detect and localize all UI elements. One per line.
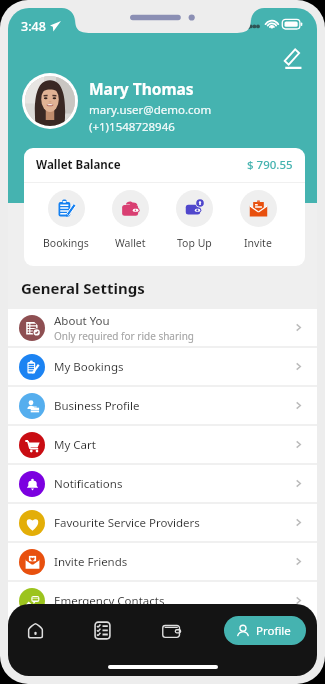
button[interactable]: Wallet bbox=[157, 616, 185, 644]
button[interactable]: Favourite Service Providers bbox=[8, 504, 317, 541]
staticText: Notifications bbox=[54, 476, 123, 492]
staticText: Favourite Service Providers bbox=[54, 515, 200, 531]
staticText: mary.user@demo.com bbox=[89, 102, 212, 118]
staticText: Invite Friends bbox=[54, 554, 128, 570]
button[interactable]: Home bbox=[21, 616, 49, 644]
staticText: Business Profile bbox=[54, 398, 140, 414]
staticText: My Cart bbox=[54, 437, 96, 453]
button[interactable]: Orders bbox=[88, 616, 116, 644]
staticText: Only required for ride sharing bbox=[54, 329, 195, 343]
staticText: 3:48 bbox=[21, 18, 46, 35]
staticText: Mary Thomas bbox=[89, 78, 194, 99]
button[interactable]: About You bbox=[8, 309, 317, 346]
button[interactable]: Edit profile bbox=[279, 43, 306, 70]
button[interactable]: My Bookings bbox=[8, 348, 317, 385]
staticText: About You bbox=[54, 313, 110, 329]
staticText: Emergency Contacts bbox=[54, 593, 165, 609]
button[interactable]: Notifications bbox=[8, 465, 317, 502]
staticText: (+1)1548728946 bbox=[89, 119, 175, 135]
staticText: Wallet Balance bbox=[36, 157, 121, 173]
button[interactable]: Bookings bbox=[34, 183, 98, 250]
button[interactable]: Profile bbox=[224, 616, 306, 645]
button[interactable]: Business Profile bbox=[8, 387, 317, 424]
staticText: $ 790.55 bbox=[247, 157, 293, 173]
button[interactable]: My Cart bbox=[8, 426, 317, 463]
staticText: Invite bbox=[244, 236, 272, 250]
button[interactable]: Emergency Contacts bbox=[8, 582, 317, 619]
staticText: Top Up bbox=[177, 236, 212, 250]
staticText: Bookings bbox=[43, 236, 89, 250]
button[interactable]: Invite Friends bbox=[8, 543, 317, 580]
button[interactable]: Wallet bbox=[98, 183, 162, 250]
staticText: My Bookings bbox=[54, 359, 124, 375]
staticText: Profile bbox=[256, 623, 291, 639]
staticText: Wallet bbox=[115, 236, 146, 250]
staticText: General Settings bbox=[21, 278, 145, 298]
button[interactable]: Top Up bbox=[162, 183, 226, 250]
button[interactable]: Invite bbox=[226, 183, 290, 250]
